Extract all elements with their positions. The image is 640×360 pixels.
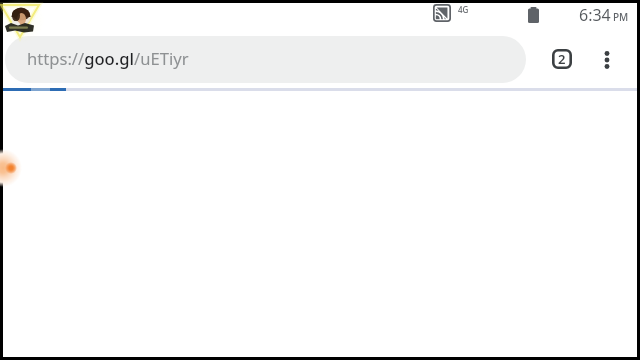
- button[interactable]: Tabs, 2 open: [542, 39, 582, 79]
- staticText: 6:34: [579, 4, 611, 26]
- button[interactable]: https://goo.gl/uETiyr: [5, 36, 526, 83]
- staticText: PM: [613, 10, 629, 24]
- staticText: 4G: [458, 4, 469, 15]
- button[interactable]: More options: [587, 40, 627, 80]
- staticText: 2: [558, 50, 566, 68]
- staticText: https://goo.gl/uETiyr: [27, 47, 189, 70]
